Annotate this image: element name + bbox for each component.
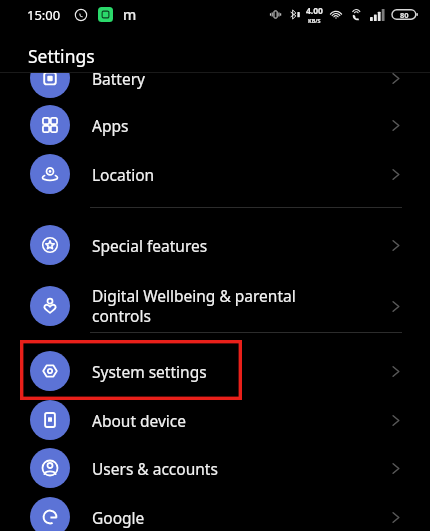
staticText: About device xyxy=(92,410,367,431)
staticText: Users & accounts xyxy=(92,458,367,479)
staticText: Battery xyxy=(92,73,367,89)
other: Location xyxy=(388,167,403,182)
staticText: Apps xyxy=(92,115,367,136)
button[interactable]: Google xyxy=(0,492,430,531)
other: Apps xyxy=(388,118,403,133)
staticText: KB/S xyxy=(308,17,321,24)
other: System settings xyxy=(388,364,403,379)
other: About device xyxy=(388,413,403,428)
button[interactable]: Battery xyxy=(0,73,430,103)
other: Google xyxy=(388,510,403,525)
other: Digital Wellbeing & parental controls xyxy=(388,299,403,314)
other: Battery xyxy=(388,73,403,86)
staticText: Google xyxy=(92,507,367,528)
button[interactable]: Location xyxy=(0,149,430,199)
other: Users & accounts xyxy=(388,461,403,476)
button[interactable]: Special features xyxy=(0,220,430,270)
staticText: 4.00 xyxy=(306,5,323,17)
staticText: m xyxy=(123,5,137,24)
staticText: Settings xyxy=(28,44,95,68)
staticText: Digital Wellbeing & parental controls xyxy=(92,285,367,327)
button[interactable]: Digital Wellbeing & parental controls xyxy=(0,274,430,338)
button[interactable]: System settings xyxy=(0,346,430,396)
staticText: System settings xyxy=(92,361,367,382)
staticText: Location xyxy=(92,164,367,185)
staticText: Special features xyxy=(92,235,367,256)
button[interactable]: Apps xyxy=(0,100,430,150)
button[interactable]: Users & accounts xyxy=(0,443,430,493)
staticText: 80 xyxy=(400,10,409,20)
button[interactable]: About device xyxy=(0,395,430,445)
other: Special features xyxy=(388,238,403,253)
staticText: 15:00 xyxy=(27,6,61,24)
